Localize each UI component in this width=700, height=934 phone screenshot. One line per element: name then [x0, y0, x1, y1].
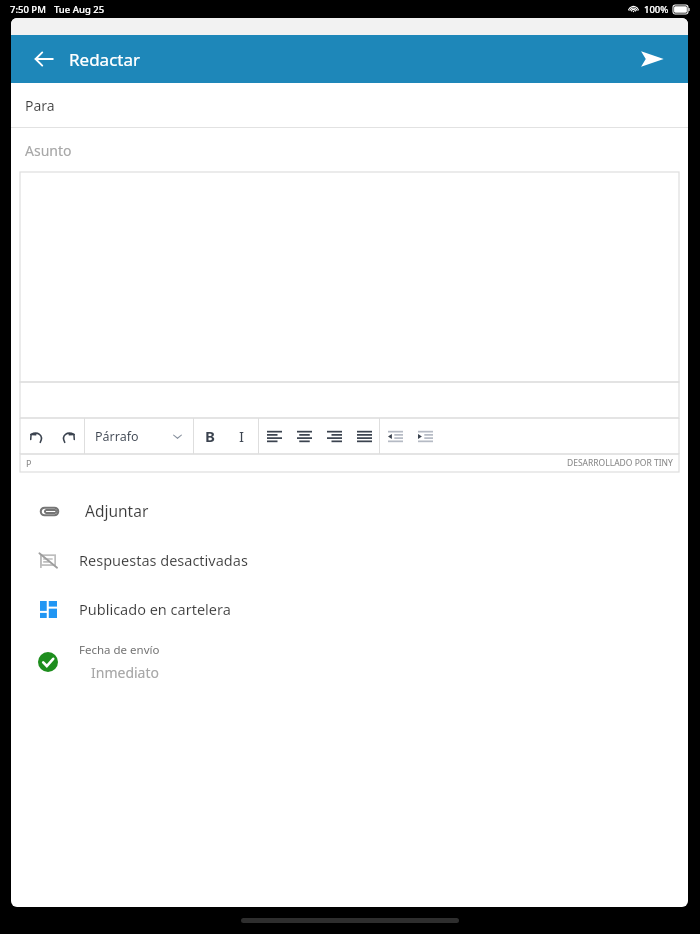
staticText: Fecha de envío: [79, 642, 160, 658]
button[interactable]: Undo: [20, 420, 52, 452]
staticText: DESARROLLADO POR TINY: [567, 457, 673, 469]
button[interactable]: Bold: [194, 420, 226, 452]
button[interactable]: Align 2: [319, 421, 349, 451]
button[interactable]: Adjuntar: [11, 486, 688, 535]
staticText: 100%: [644, 3, 669, 16]
staticText: Para: [25, 96, 55, 115]
button[interactable]: Redo: [52, 420, 84, 452]
button[interactable]: Publicado en cartelera: [11, 584, 688, 633]
staticText: P: [26, 457, 32, 469]
staticText: 7:50 PM: [10, 3, 46, 16]
staticText: Publicado en cartelera: [79, 599, 231, 619]
button[interactable]: Fecha de envío: [11, 633, 688, 691]
staticText: Asunto: [25, 141, 72, 160]
button[interactable]: Italic: [226, 420, 258, 452]
staticText: B: [205, 426, 215, 446]
staticText: Respuestas desactivadas: [79, 550, 248, 570]
button[interactable]: Send: [632, 39, 672, 79]
button[interactable]: Párrafo: [85, 418, 193, 454]
button[interactable]: Back: [25, 40, 63, 78]
button[interactable]: Asunto: [11, 128, 688, 172]
button[interactable]: Align 1: [289, 421, 319, 451]
button[interactable]: Align 0: [259, 421, 289, 451]
button[interactable]: Para: [11, 83, 688, 127]
button[interactable]: Outdent: [380, 421, 410, 451]
staticText: Tue Aug 25: [54, 3, 105, 16]
button[interactable]: Indent: [410, 421, 440, 451]
button[interactable]: Respuestas desactivadas: [11, 535, 688, 584]
staticText: Redactar: [69, 48, 141, 71]
staticText: Párrafo: [95, 428, 139, 445]
staticText: I: [239, 426, 245, 446]
staticText: Inmediato: [91, 663, 159, 682]
staticText: Adjuntar: [85, 500, 149, 521]
button[interactable]: Align 3: [349, 421, 379, 451]
